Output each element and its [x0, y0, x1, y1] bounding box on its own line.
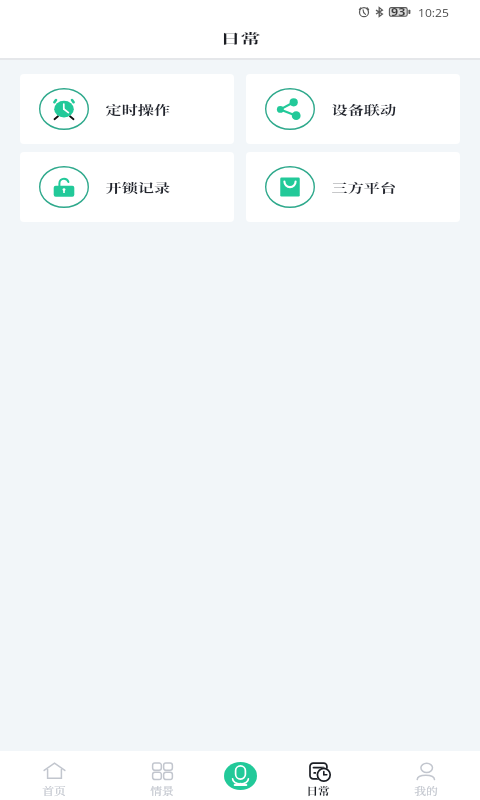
- staticText: 日常: [220, 28, 261, 47]
- button[interactable]: 情景: [108, 751, 216, 800]
- button[interactable]: 首页: [0, 751, 108, 800]
- button[interactable]: 定时操作: [20, 74, 234, 144]
- staticText: 定时操作: [105, 101, 171, 118]
- staticText: 10:25: [418, 5, 450, 20]
- staticText: 我的: [414, 783, 438, 797]
- staticText: 开锁记录: [105, 179, 171, 196]
- staticText: 日常: [306, 783, 330, 797]
- button[interactable]: Voice input: [224, 762, 257, 790]
- staticText: 首页: [42, 783, 66, 797]
- staticText: 三方平台: [331, 179, 398, 196]
- staticText: 设备联动: [331, 101, 398, 118]
- staticText: 情景: [150, 783, 174, 797]
- staticText: 93: [391, 5, 406, 19]
- button[interactable]: 日常: [264, 751, 372, 800]
- button[interactable]: 开锁记录: [20, 152, 234, 222]
- button[interactable]: 我的: [372, 751, 480, 800]
- button[interactable]: 三方平台: [246, 152, 460, 222]
- button[interactable]: 设备联动: [246, 74, 460, 144]
